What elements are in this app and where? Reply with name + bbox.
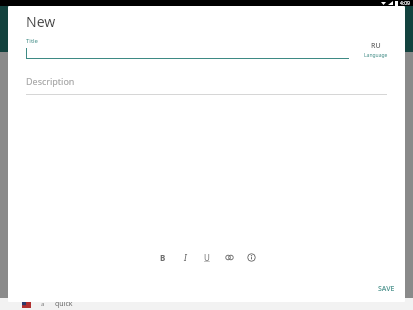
button[interactable]: Insert link [218,246,240,268]
staticText: Description [26,75,75,87]
button[interactable]: Info [240,246,262,268]
staticText: SAVE [378,284,395,294]
staticText: 4:09 [400,0,410,6]
staticText: quick [55,299,73,309]
button[interactable]: Title [26,37,349,59]
button[interactable]: Underline [196,246,218,268]
button[interactable]: SAVE [368,280,405,298]
staticText: I [184,252,187,263]
button[interactable]: Description [26,75,387,95]
button[interactable]: Italic [174,246,196,268]
staticText: RU [371,41,381,51]
button[interactable]: Bold [152,246,174,268]
staticText: U [204,252,210,263]
button[interactable]: RU [359,41,393,59]
staticText: B [160,252,166,263]
staticText: a [41,300,45,308]
staticText: New [26,12,56,31]
staticText: Title [26,37,38,45]
staticText: Language [364,52,388,59]
